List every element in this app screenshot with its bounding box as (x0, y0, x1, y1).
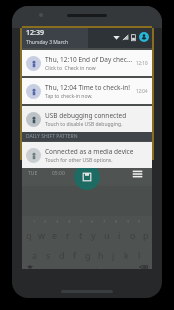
staticText: 9 (127, 219, 130, 224)
staticText: 5 (80, 219, 83, 224)
staticText: TUE (28, 170, 38, 177)
staticText: r (66, 229, 70, 241)
staticText: Tap to check-in now. (45, 93, 93, 100)
staticText: h (98, 249, 104, 261)
staticText: 12:39 (26, 28, 44, 38)
button[interactable]: Save (74, 164, 100, 190)
button[interactable]: Thu, 12:10 End of Day check-in! (22, 50, 152, 76)
button[interactable]: Connected as a media device (22, 142, 152, 168)
staticText: d (59, 249, 65, 261)
staticText: l (138, 249, 141, 261)
staticText: 3 (56, 219, 59, 224)
staticText: u (104, 229, 110, 241)
staticText: o (130, 229, 136, 241)
button[interactable]: g (81, 245, 94, 265)
staticText: Connected as a media device (45, 147, 134, 156)
staticText: 7 (103, 219, 106, 224)
staticText: k (124, 249, 129, 261)
staticText: 4 (68, 219, 71, 224)
staticText: 12:10 (136, 60, 148, 66)
staticText: p (143, 229, 149, 241)
staticText: q (26, 229, 32, 241)
staticText: t (79, 229, 83, 241)
staticText: w (38, 229, 46, 241)
staticText: 2 (44, 219, 47, 224)
staticText: s (46, 249, 51, 261)
staticText: 0 (138, 219, 141, 224)
staticText: Touch to disable USB debugging. (45, 121, 123, 128)
staticText: f (73, 249, 77, 261)
staticText: 6 (91, 219, 94, 224)
staticText: Thursday 3 March (26, 39, 69, 46)
staticText: 1 (33, 219, 36, 224)
staticText: 12:04 (136, 88, 148, 94)
staticText: y (91, 229, 96, 241)
staticText: Click to Check in now (45, 65, 96, 72)
button[interactable]: User account (139, 32, 149, 42)
button[interactable]: Backspace (134, 265, 152, 269)
staticText: g (85, 249, 91, 261)
button[interactable]: w (35, 225, 48, 245)
staticText: USB debugging connected (45, 111, 127, 120)
button[interactable]: Shift (22, 265, 38, 269)
button[interactable]: p (139, 225, 152, 245)
staticText: 05:00 (52, 170, 65, 177)
staticText: a (32, 249, 38, 261)
staticText: i (118, 229, 121, 241)
button[interactable]: USB debugging connected (22, 106, 152, 132)
staticText: Thu, 12:04 Time to check-in! (45, 83, 131, 92)
staticText: DAILY SHIFT PATTERN (26, 133, 78, 140)
staticText: e (52, 229, 58, 241)
staticText: Thu, 12:10 End of Day check-in! (45, 55, 134, 64)
staticText: 8 (115, 219, 118, 224)
button[interactable]: Thu, 12:04 Time to check-in! (22, 78, 152, 104)
staticText: j (112, 249, 115, 261)
staticText: Touch for other USB options. (45, 157, 113, 164)
